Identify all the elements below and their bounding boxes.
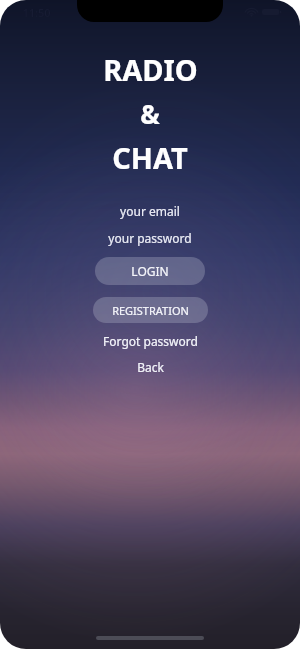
staticText: REGISTRATION — [112, 303, 189, 318]
staticText: your password — [108, 230, 192, 246]
button[interactable]: LOGIN — [95, 257, 205, 285]
staticText: & — [140, 96, 160, 131]
staticText: your email — [120, 203, 180, 219]
staticText: CHAT — [112, 138, 188, 177]
staticText: RADIO — [103, 50, 198, 89]
staticText: LOGIN — [131, 263, 169, 279]
staticText: Back — [137, 359, 164, 375]
staticText: Forgot password — [103, 333, 198, 349]
button[interactable]: your password — [65, 228, 235, 248]
button[interactable]: Back — [95, 357, 205, 377]
button[interactable]: REGISTRATION — [93, 297, 208, 323]
button[interactable]: Forgot password — [75, 331, 225, 351]
button[interactable]: your email — [65, 201, 235, 221]
